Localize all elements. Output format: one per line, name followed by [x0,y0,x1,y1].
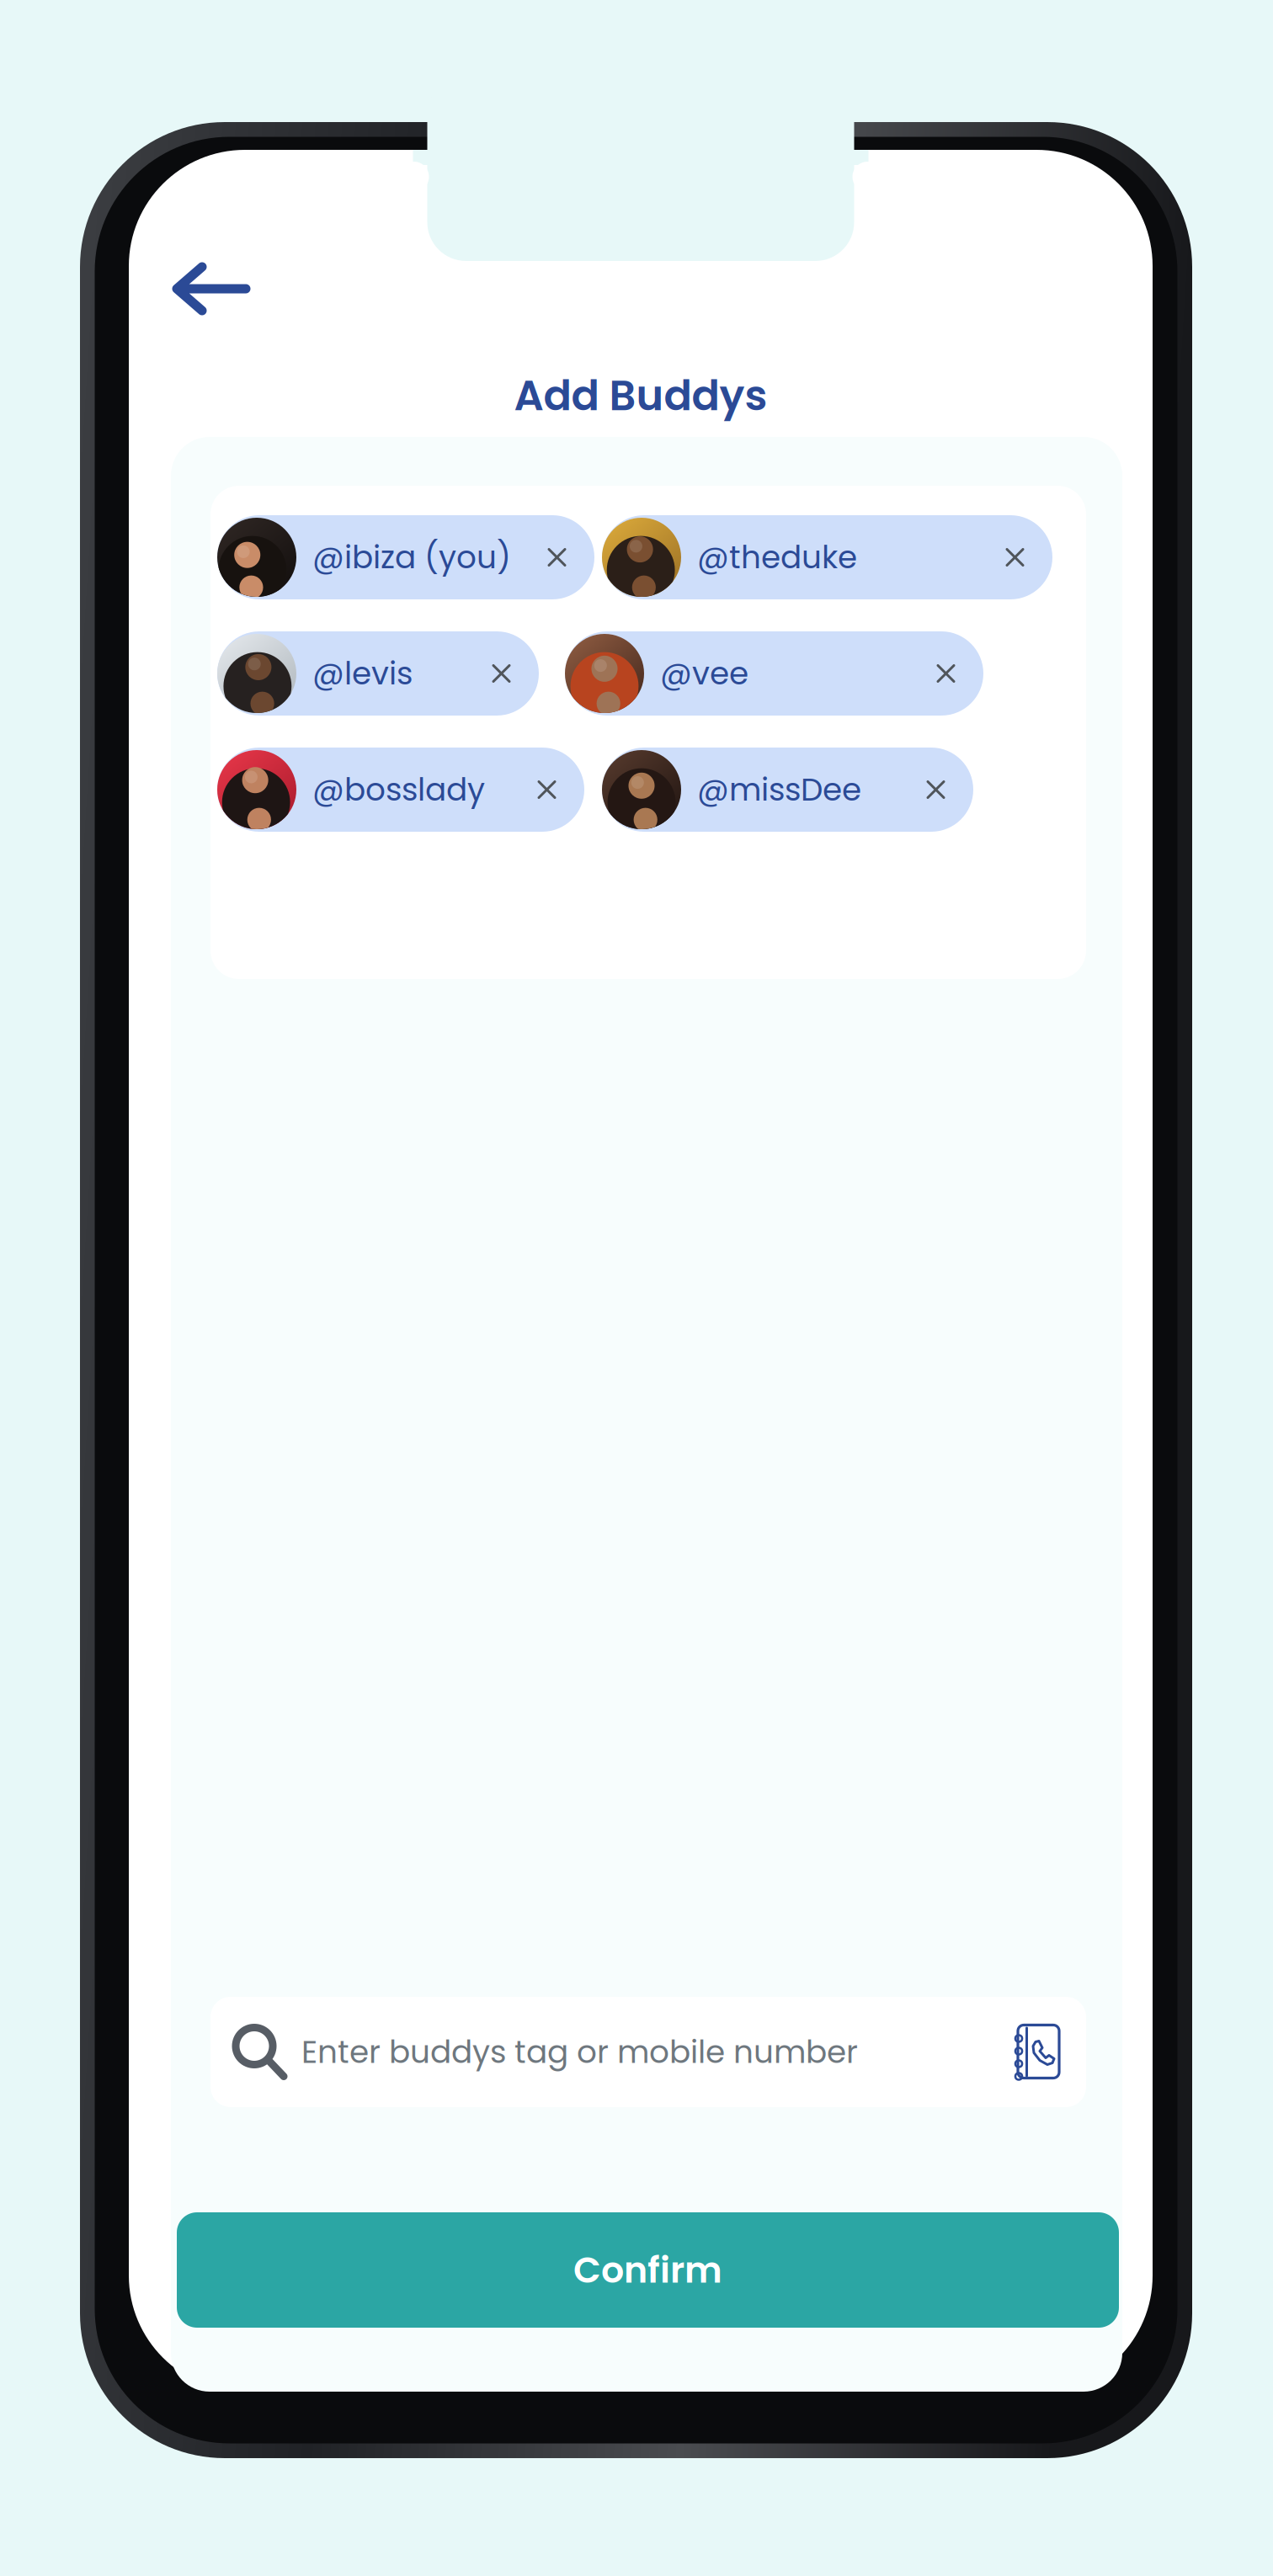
staticText: @levis [312,651,413,696]
staticText: @bosslady [312,768,485,812]
button[interactable]: @bosslady [217,748,584,832]
staticText: @vee [660,651,748,696]
button[interactable]: Back [153,244,269,334]
staticText: Enter buddys tag or mobile number [301,2030,858,2074]
staticText: @missDee [697,768,861,812]
staticText: @theduke [697,535,857,579]
staticText: Add Buddys [514,367,767,425]
staticText: @ibiza (you) [312,535,511,579]
button[interactable]: @missDee [602,748,973,832]
button[interactable]: @ibiza (you) [217,515,594,599]
button[interactable]: @vee [565,631,983,716]
button[interactable]: @levis [217,631,539,716]
staticText: Confirm [573,2245,722,2295]
button[interactable]: Confirm [177,2212,1119,2328]
button[interactable]: Choose from contacts [1004,2015,1073,2089]
button[interactable]: @theduke [602,515,1052,599]
